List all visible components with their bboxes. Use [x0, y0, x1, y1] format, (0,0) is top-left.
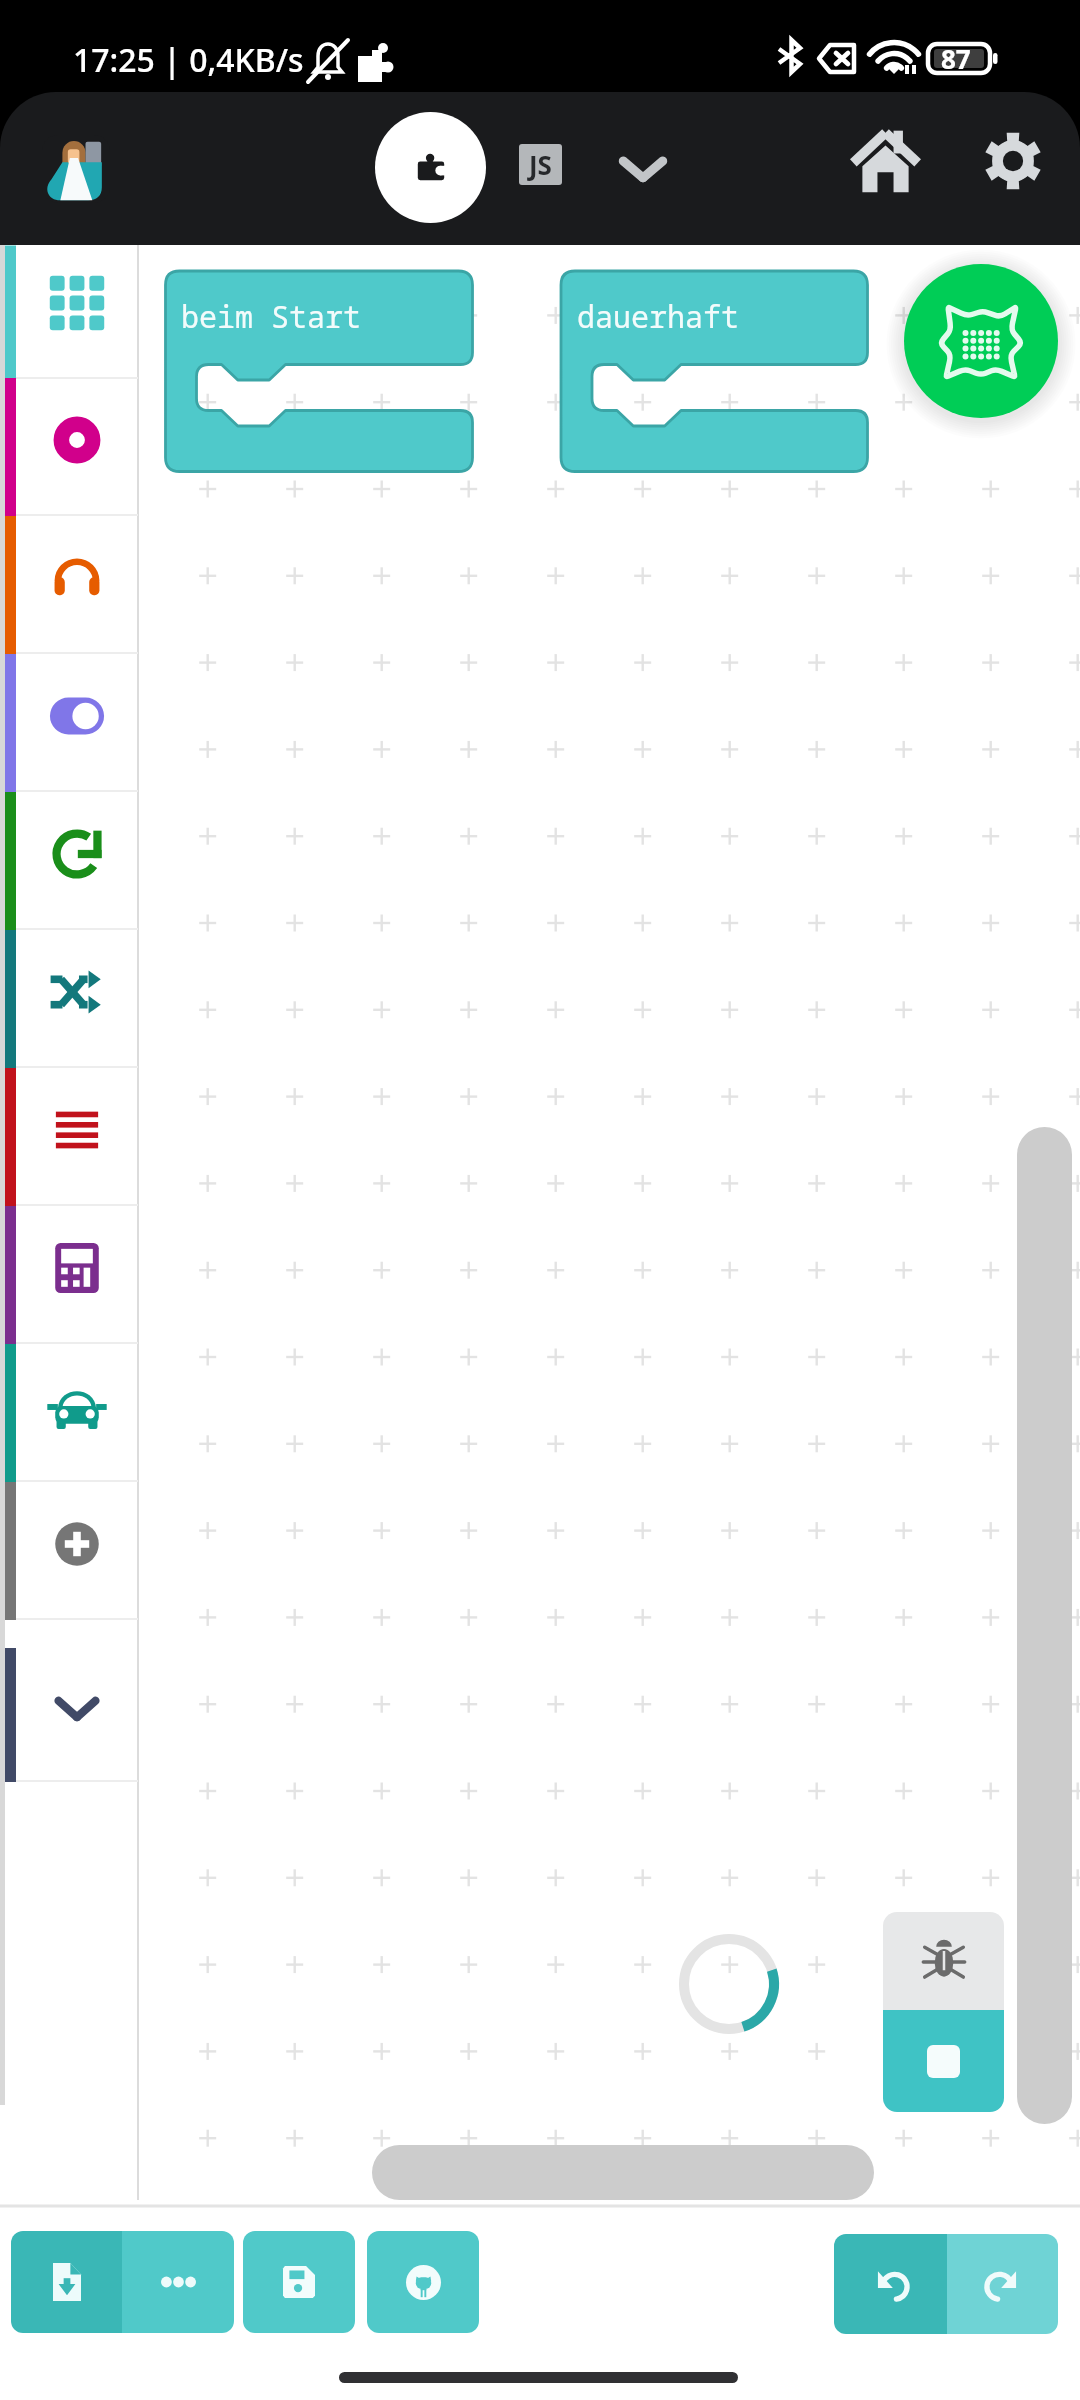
button[interactable]: Logik — [0, 930, 140, 1068]
button[interactable]: Erweiterung hinzufügen — [0, 1482, 140, 1620]
button[interactable]: micro:bit simulator — [904, 264, 1058, 418]
button[interactable]: More — [122, 2231, 234, 2333]
button[interactable]: Download — [11, 2231, 122, 2333]
staticText: dauerhaft — [577, 296, 739, 337]
button[interactable]: JavaScript — [519, 144, 562, 185]
button[interactable]: Debug — [883, 1912, 1004, 2010]
button[interactable]: GitHub — [367, 2231, 479, 2333]
button[interactable]: Mehr anzeigen — [0, 1648, 140, 1782]
button[interactable]: Save — [243, 2231, 355, 2333]
staticText: 87 — [941, 41, 971, 76]
button[interactable]: Undo — [834, 2234, 947, 2334]
button[interactable]: Grundlagen — [0, 241, 140, 379]
staticText: JS — [529, 147, 552, 182]
staticText: 17:25 | 0,4KB/s — [73, 38, 304, 82]
button[interactable]: Erweiterte Kategorien — [0, 1344, 140, 1482]
button[interactable]: Settings — [969, 117, 1057, 205]
button[interactable]: Musik — [0, 516, 140, 654]
button[interactable]: Home — [841, 117, 929, 205]
button[interactable]: Eingabe — [0, 378, 140, 516]
button[interactable]: Blocks — [375, 112, 486, 223]
button[interactable]: Variablen — [0, 1068, 140, 1206]
button[interactable]: More languages — [606, 131, 680, 205]
button[interactable]: Redo — [947, 2234, 1058, 2334]
button[interactable]: LED — [0, 654, 140, 792]
button[interactable]: Schleifen — [0, 792, 140, 930]
button[interactable]: Mathematik — [0, 1206, 140, 1344]
button[interactable]: Stop — [883, 2010, 1004, 2112]
button[interactable]: App icon — [42, 135, 110, 203]
staticText: beim Start — [181, 296, 361, 337]
